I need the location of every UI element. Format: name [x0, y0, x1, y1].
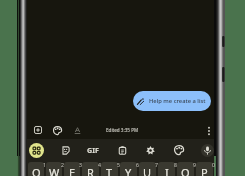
staticText: 7	[155, 161, 158, 168]
staticText: U	[143, 165, 152, 176]
button[interactable]: More options	[202, 124, 215, 137]
button[interactable]: I	[158, 162, 175, 176]
staticText: T	[106, 165, 113, 176]
staticText: GIF	[87, 145, 99, 155]
staticText: R	[87, 165, 94, 176]
staticText: Y	[125, 165, 132, 176]
button[interactable]: T	[101, 162, 118, 176]
button[interactable]: R	[82, 162, 99, 176]
staticText: E	[69, 165, 76, 176]
button[interactable]: Format text	[69, 122, 85, 138]
staticText: 0	[212, 161, 215, 168]
staticText: P	[201, 165, 208, 176]
button[interactable]: Y	[120, 162, 137, 176]
staticText: 5	[117, 161, 120, 168]
staticText: Q	[32, 165, 41, 176]
button[interactable]: Voice input	[198, 141, 216, 159]
staticText: 2	[61, 161, 64, 168]
button[interactable]: Help me create a list	[133, 91, 211, 111]
button[interactable]: W	[46, 162, 62, 176]
staticText: 8	[174, 161, 177, 168]
staticText: 9	[193, 161, 196, 168]
button[interactable]: U	[139, 162, 156, 176]
button[interactable]: Add	[30, 122, 46, 138]
staticText: Help me create a list	[149, 97, 206, 105]
button[interactable]: GIF	[84, 141, 102, 159]
button[interactable]: Q	[28, 162, 44, 176]
button[interactable]: P	[196, 162, 213, 176]
staticText: 6	[136, 161, 139, 168]
staticText: 1	[43, 161, 46, 168]
button[interactable]: O	[177, 162, 194, 176]
button[interactable]: Clipboard	[113, 141, 131, 159]
staticText: Edited 3:35 PM	[106, 127, 139, 133]
staticText: I	[165, 165, 169, 176]
staticText: W	[49, 165, 60, 176]
staticText: O	[181, 165, 190, 176]
button[interactable]: Settings	[141, 141, 159, 159]
button[interactable]: Theme	[170, 141, 188, 159]
staticText: 3	[79, 161, 82, 168]
staticText: 4	[98, 161, 101, 168]
button[interactable]: Keyboard tools	[27, 141, 45, 159]
button[interactable]: E	[64, 162, 80, 176]
button[interactable]: Background colour	[49, 122, 65, 138]
button[interactable]: Stickers	[56, 141, 74, 159]
